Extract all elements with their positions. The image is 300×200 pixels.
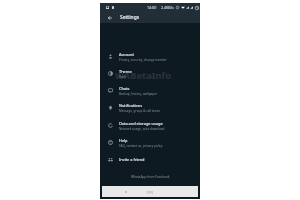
staticText: Data and storage usage — [119, 121, 163, 126]
staticText: FAQ, contact us, privacy policy — [119, 144, 163, 148]
button[interactable]: Help — [100, 134, 200, 151]
staticText: Notifications — [119, 103, 143, 108]
staticText: Privacy, security, change number — [119, 58, 167, 62]
staticText: Settings — [120, 14, 140, 21]
staticText: Account — [119, 52, 134, 57]
staticText: Invite a friend — [119, 157, 145, 162]
staticText: Dark — [119, 75, 126, 79]
staticText: WhatsApp from Facebook — [131, 175, 170, 179]
staticText: WABetaInfo — [115, 69, 172, 82]
button[interactable]: Back — [122, 188, 130, 196]
button[interactable]: Chats — [100, 82, 200, 99]
staticText: Theme — [119, 69, 132, 74]
button[interactable]: Account — [100, 48, 200, 65]
button[interactable]: Invite a friend — [100, 151, 200, 168]
button[interactable]: Notifications — [100, 99, 200, 116]
staticText: 14:00 — [147, 5, 157, 10]
button[interactable]: Theme — [100, 65, 200, 82]
staticText: Message, group & call tones — [119, 109, 160, 113]
staticText: Help — [119, 138, 128, 143]
button[interactable]: Back — [103, 12, 116, 23]
staticText: Backup, history, wallpaper — [119, 92, 158, 96]
staticText: 2.4KB/s — [161, 5, 174, 10]
staticText: Chats — [119, 86, 130, 91]
button[interactable]: Home — [146, 188, 154, 196]
staticText: Network usage, auto download — [119, 127, 165, 131]
button[interactable]: Data and storage usage — [100, 117, 200, 134]
